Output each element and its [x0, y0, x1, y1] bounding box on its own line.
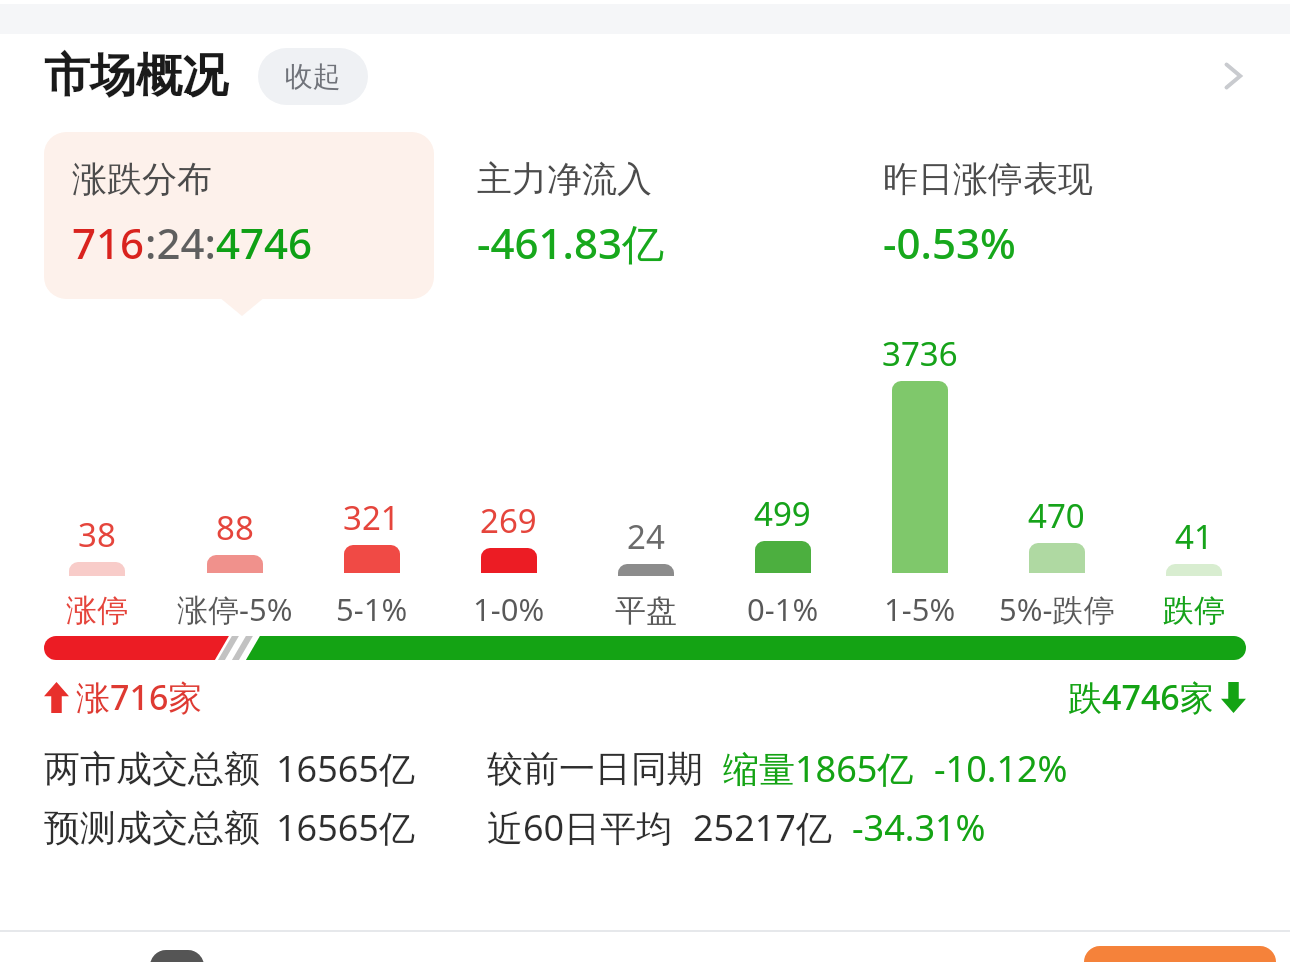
- staticText: 平盘: [615, 591, 677, 630]
- staticText: 两市成交总额: [44, 746, 260, 791]
- staticText: 跌停: [1163, 591, 1225, 630]
- staticText: :24:: [145, 214, 216, 271]
- button[interactable]: 预测成交总额: [44, 803, 1246, 852]
- button[interactable]: 41: [1125, 514, 1262, 630]
- staticText: 缩量1865亿: [723, 744, 914, 793]
- staticText: 涨停: [66, 591, 128, 630]
- staticText: 321: [343, 495, 400, 540]
- staticText: 近60日平均: [487, 803, 673, 852]
- staticText: -34.31%: [852, 803, 986, 852]
- button[interactable]: 24: [577, 514, 714, 630]
- staticText: 41: [1175, 514, 1213, 559]
- button[interactable]: 321: [303, 495, 440, 630]
- staticText: 470: [1028, 493, 1085, 538]
- button[interactable]: 38: [28, 512, 166, 630]
- staticText: 预测成交总额: [44, 805, 260, 850]
- staticText: 716: [72, 214, 145, 271]
- staticText: 88: [216, 505, 254, 550]
- staticText: 收起: [285, 59, 341, 94]
- button[interactable]: 昨日涨停表现: [855, 132, 1246, 299]
- staticText: 较前一日同期: [487, 746, 703, 791]
- staticText: 涨停-5%: [177, 588, 293, 630]
- button[interactable]: 收起: [258, 48, 368, 105]
- staticText: 5-1%: [336, 588, 408, 630]
- staticText: 25217亿: [693, 803, 832, 852]
- staticText: 4746: [216, 214, 313, 271]
- button[interactable]: 470: [988, 493, 1125, 630]
- button[interactable]: Open market overview: [1204, 47, 1262, 105]
- staticText: 16565亿: [276, 803, 415, 852]
- staticText: 主力净流入: [477, 157, 652, 201]
- button[interactable]: 两市成交总额: [44, 744, 1246, 793]
- button[interactable]: 269: [440, 498, 577, 630]
- button[interactable]: 主力净流入: [449, 132, 840, 299]
- staticText: 0-1%: [747, 588, 819, 630]
- staticText: 5%-跌停: [999, 588, 1115, 630]
- button[interactable]: Promotion banner: [1084, 946, 1276, 962]
- button[interactable]: 88: [166, 505, 303, 630]
- staticText: 涨716家: [76, 674, 203, 720]
- staticText: 1-5%: [884, 588, 956, 630]
- staticText: 499: [754, 491, 811, 536]
- staticText: -461.83亿: [477, 214, 665, 271]
- staticText: 269: [480, 498, 537, 543]
- button[interactable]: 499: [714, 491, 851, 630]
- staticText: 16565亿: [276, 744, 415, 793]
- staticText: 市场概况: [44, 47, 228, 105]
- button[interactable]: Advance decline ratio: [44, 636, 1246, 660]
- staticText: 24: [627, 514, 665, 559]
- staticText: 跌4746家: [1068, 674, 1214, 720]
- staticText: -10.12%: [934, 744, 1068, 793]
- staticText: -0.53%: [883, 214, 1016, 271]
- staticText: 昨日涨停表现: [883, 157, 1093, 201]
- button[interactable]: 3736: [851, 331, 988, 630]
- button[interactable]: 涨跌分布: [44, 132, 434, 299]
- button[interactable]: 跌4746家: [1068, 674, 1246, 720]
- staticText: 3736: [882, 331, 958, 376]
- button[interactable]: 涨716家: [44, 674, 203, 720]
- staticText: 涨跌分布: [72, 157, 212, 201]
- staticText: 1-0%: [473, 588, 545, 630]
- staticText: 38: [78, 512, 116, 557]
